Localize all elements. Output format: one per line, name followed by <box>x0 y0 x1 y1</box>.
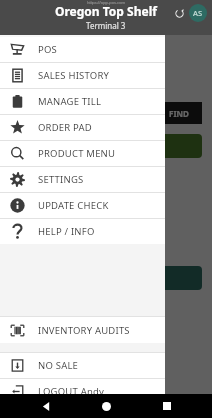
button[interactable]: PRODUCT MENU <box>0 141 165 166</box>
staticText: UPDATE CHECK <box>38 199 109 212</box>
button[interactable]: Home <box>91 394 121 418</box>
staticText: POS <box>38 43 57 56</box>
staticText: FIND <box>169 108 189 119</box>
button[interactable]: NO SALE <box>0 353 165 378</box>
button[interactable]: MANAGE TILL <box>0 89 165 114</box>
staticText: NEW GUEST? <box>10 228 73 242</box>
staticText: SETTINGS <box>38 173 84 186</box>
staticText: AS <box>193 8 203 18</box>
staticText: LOGOUT Andy <box>38 385 105 398</box>
staticText: Terminal 3 <box>86 20 126 31</box>
button[interactable]: Recent apps <box>152 394 182 418</box>
staticText: HELP / INFO <box>38 225 95 238</box>
button[interactable]: Refresh <box>172 6 186 20</box>
staticText: INVENTORY AUDITS <box>38 324 130 337</box>
button[interactable]: POS <box>0 37 165 62</box>
staticText: Oregon Top Shelf <box>55 3 157 19</box>
button[interactable]: INVENTORY AUDITS <box>0 317 165 343</box>
staticText: HAVE A PROFILE? <box>10 63 95 77</box>
staticText: NO SALE <box>38 359 79 372</box>
staticText: ORDER PAD <box>38 121 93 134</box>
button[interactable]: Back <box>31 394 61 418</box>
button[interactable]: HELP / INFO <box>0 219 165 244</box>
button[interactable]: SALES HISTORY <box>0 63 165 88</box>
button[interactable]: LOGOUT Andy <box>0 379 165 404</box>
button[interactable]: SETTINGS <box>0 167 165 192</box>
button[interactable]: Account AS <box>189 4 207 22</box>
staticText: PRODUCT MENU <box>38 147 116 160</box>
staticText: https://app-pos.com <box>87 0 126 5</box>
staticText: SALES HISTORY <box>38 69 110 82</box>
button[interactable]: UPDATE CHECK <box>0 193 165 218</box>
staticText: MANAGE TILL <box>38 95 102 108</box>
button[interactable]: ORDER PAD <box>0 115 165 140</box>
staticText: SCAN ID <box>10 85 43 96</box>
